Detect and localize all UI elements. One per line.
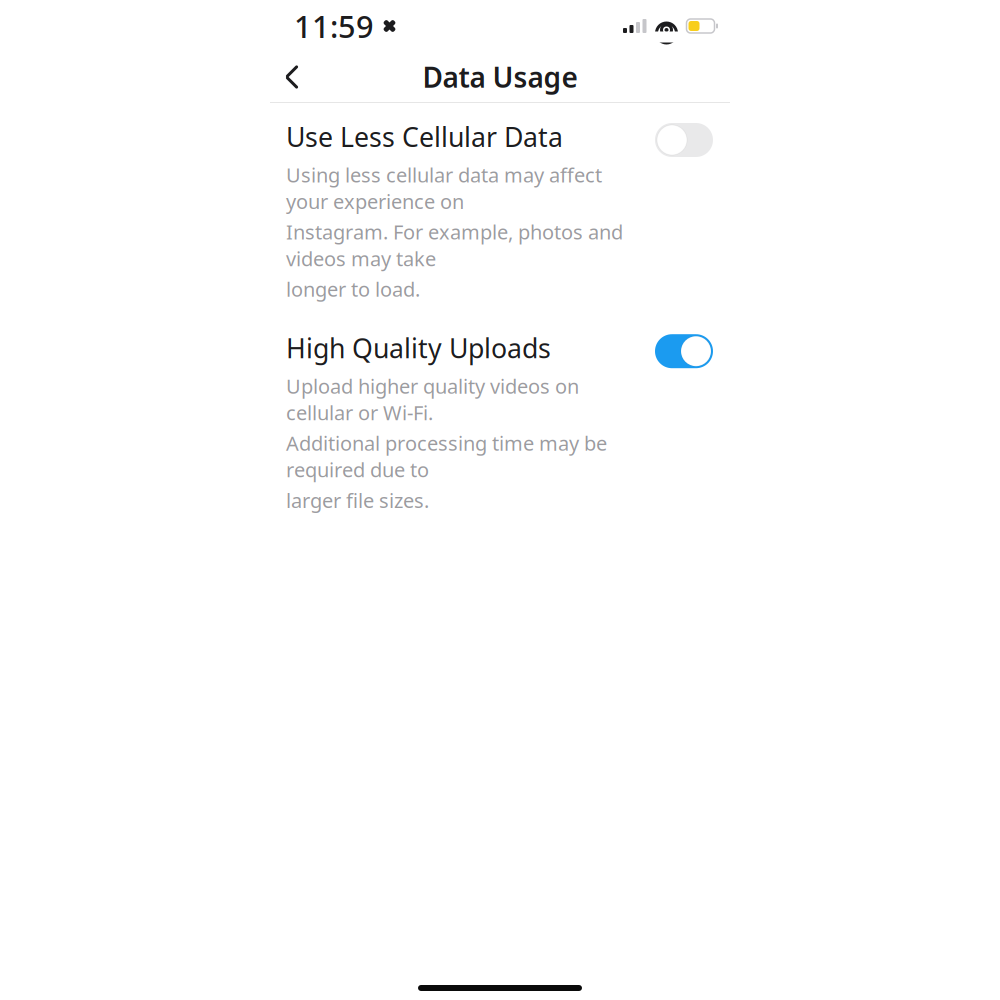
staticText: larger file sizes.: [286, 487, 429, 513]
staticText: Using less cellular data may affect your…: [286, 161, 602, 214]
staticText: longer to load.: [286, 276, 420, 302]
staticText: Upload higher quality videos on cellular…: [286, 373, 579, 426]
staticText: Data Usage: [422, 58, 577, 96]
staticText: Use Less Cellular Data: [286, 119, 563, 154]
button[interactable]: Use Less Cellular Data: [0, 103, 1000, 314]
button[interactable]: Back: [270, 55, 314, 99]
staticText: 11:59: [294, 6, 374, 46]
staticText: Instagram. For example, photos and video…: [286, 218, 623, 272]
staticText: High Quality Uploads: [286, 330, 551, 366]
button[interactable]: High Quality Uploads: [0, 314, 1000, 525]
staticText: Additional processing time may be requir…: [286, 430, 607, 483]
